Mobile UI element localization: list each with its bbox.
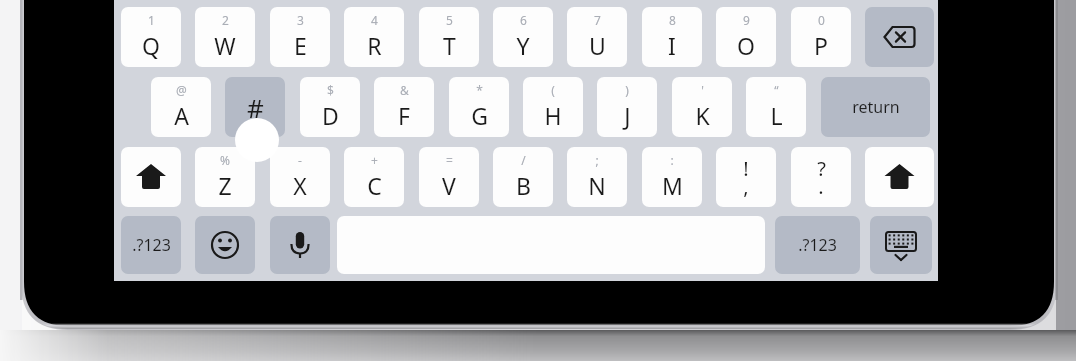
button[interactable]: # (225, 77, 285, 137)
button[interactable]: 0 (791, 7, 851, 67)
staticText: N (588, 170, 606, 201)
button[interactable]: 6 (493, 7, 553, 67)
button[interactable]: Shift (121, 147, 181, 207)
button[interactable]: 5 (419, 7, 479, 67)
button[interactable]: = (419, 147, 479, 207)
staticText: = (446, 152, 453, 168)
staticText: return (852, 96, 900, 118)
staticText: 2 (222, 12, 229, 28)
button[interactable]: Emoji (195, 216, 255, 274)
button[interactable]: & (374, 77, 434, 137)
staticText: 6 (520, 12, 527, 28)
staticText: & (400, 82, 409, 98)
staticText: C (367, 170, 382, 201)
staticText: H (544, 100, 562, 131)
button[interactable]: Shift (865, 147, 934, 207)
staticText: F (398, 100, 410, 131)
staticText: Y (516, 30, 530, 61)
staticText: ! (743, 155, 749, 182)
button[interactable]: - (270, 147, 330, 207)
staticText: ? (817, 155, 826, 182)
staticText: , (743, 173, 749, 200)
staticText: E (294, 30, 307, 61)
staticText: L (770, 100, 783, 131)
staticText: 1 (148, 12, 155, 28)
button[interactable]: return (821, 77, 930, 137)
button[interactable]: @ (151, 77, 211, 137)
button[interactable]: : (642, 147, 702, 207)
staticText: : (670, 152, 674, 168)
staticText: ; (595, 152, 599, 168)
button[interactable]: 4 (344, 7, 404, 67)
staticText: D (322, 100, 339, 131)
staticText: T (443, 30, 456, 61)
staticText: P (814, 30, 828, 61)
staticText: 3 (297, 12, 304, 28)
staticText: 4 (371, 12, 378, 28)
button[interactable]: 3 (270, 7, 330, 67)
staticText: V (442, 170, 456, 201)
staticText: ) (625, 82, 629, 98)
staticText: U (589, 30, 606, 61)
staticText: “ (774, 82, 779, 98)
button[interactable]: * (449, 77, 509, 137)
staticText: # (247, 90, 264, 125)
staticText: $ (327, 82, 334, 98)
button[interactable]: Dictate (270, 216, 330, 274)
staticText: 9 (743, 12, 750, 28)
button[interactable]: ) (597, 77, 657, 137)
button[interactable]: $ (300, 77, 360, 137)
staticText: O (737, 30, 755, 61)
button[interactable]: Hide keyboard (870, 216, 932, 274)
staticText: . (818, 173, 824, 200)
staticText: ( (551, 82, 555, 98)
button[interactable]: “ (746, 77, 806, 137)
button[interactable]: 8 (642, 7, 702, 67)
staticText: Z (218, 170, 232, 201)
staticText: R (367, 30, 382, 61)
button[interactable]: 9 (716, 7, 776, 67)
button[interactable]: / (493, 147, 553, 207)
button[interactable]: 2 (195, 7, 255, 67)
staticText: ' (701, 82, 704, 98)
staticText: X (293, 170, 307, 201)
button[interactable]: % (195, 147, 255, 207)
staticText: B (516, 170, 531, 201)
staticText: W (214, 30, 236, 61)
button[interactable]: ' (672, 77, 732, 137)
staticText: M (662, 170, 683, 201)
staticText: .?123 (132, 234, 171, 256)
staticText: J (624, 100, 631, 131)
staticText: % (220, 152, 230, 168)
button[interactable]: .?123 (775, 216, 860, 274)
staticText: / (521, 152, 526, 168)
staticText: Q (142, 30, 160, 61)
staticText: 8 (669, 12, 676, 28)
staticText: .?123 (798, 234, 837, 256)
staticText: + (371, 152, 378, 168)
staticText: K (695, 100, 710, 131)
button[interactable]: .?123 (121, 216, 181, 274)
staticText: @ (176, 82, 187, 98)
button[interactable]: ? (791, 147, 851, 207)
staticText: I (668, 30, 676, 61)
button[interactable]: ( (523, 77, 583, 137)
staticText: 0 (818, 12, 825, 28)
staticText: 5 (446, 12, 453, 28)
staticText: A (174, 100, 189, 131)
button[interactable]: ; (567, 147, 627, 207)
staticText: 7 (594, 12, 601, 28)
button[interactable]: ! (716, 147, 776, 207)
button[interactable]: Backspace (865, 7, 934, 67)
staticText: * (476, 82, 483, 98)
button[interactable]: 1 (121, 7, 181, 67)
staticText: - (298, 152, 302, 168)
staticText: G (471, 100, 488, 131)
button[interactable]: + (344, 147, 404, 207)
button[interactable]: 7 (567, 7, 627, 67)
